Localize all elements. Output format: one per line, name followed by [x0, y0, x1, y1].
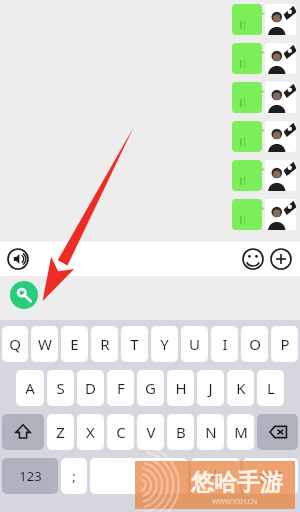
staticText: E — [70, 334, 79, 354]
staticText: M — [234, 422, 248, 442]
button[interactable]: Shift — [2, 414, 44, 450]
button[interactable]: Z — [47, 414, 74, 450]
button[interactable]: O — [241, 326, 268, 362]
button[interactable]: T — [121, 326, 148, 362]
staticText: G — [145, 378, 156, 398]
staticText: Z — [56, 422, 65, 442]
button[interactable]: 换行 — [243, 458, 298, 494]
staticText: J — [208, 378, 213, 398]
button[interactable]: Space — [90, 458, 188, 494]
staticText: 换行 — [259, 469, 283, 484]
staticText: U — [189, 334, 200, 354]
button[interactable]: F — [107, 370, 134, 406]
button[interactable]: Avatar — [265, 43, 296, 74]
staticText: Q — [9, 334, 21, 354]
staticText: A — [25, 378, 35, 398]
button[interactable]: P — [271, 326, 298, 362]
staticText: C — [116, 422, 126, 442]
staticText: Y — [160, 334, 169, 354]
button[interactable]: W — [31, 326, 58, 362]
staticText: 123 — [19, 467, 42, 485]
button[interactable] — [34, 246, 234, 272]
staticText: X — [86, 422, 95, 442]
staticText: V — [146, 422, 156, 442]
staticText: P — [280, 334, 290, 354]
button[interactable]: Avatar — [265, 160, 296, 191]
button[interactable]: Backspace — [257, 414, 298, 450]
staticText: D — [85, 378, 96, 398]
button[interactable]: K — [227, 370, 254, 406]
button[interactable]: M — [227, 414, 254, 450]
button[interactable]: A — [16, 370, 44, 406]
button[interactable] — [232, 199, 262, 230]
staticText: 悠哈手游 — [191, 468, 283, 497]
button[interactable]: R — [91, 326, 118, 362]
button[interactable]: Q — [2, 326, 28, 362]
staticText: T — [130, 334, 139, 354]
button[interactable]: Voice to text — [10, 281, 38, 309]
staticText: L — [267, 378, 275, 398]
button[interactable]: C — [107, 414, 134, 450]
button[interactable]: ; — [61, 458, 87, 494]
staticText: WWW.YXH.CN — [212, 497, 258, 507]
staticText: R — [100, 334, 110, 354]
button[interactable]: Avatar — [265, 199, 296, 230]
button[interactable]: X — [77, 414, 104, 450]
staticText: ; — [72, 467, 76, 485]
staticText: N — [205, 422, 217, 442]
button[interactable]: 123 — [2, 458, 58, 494]
staticText: B — [176, 422, 186, 442]
staticText: S — [56, 378, 65, 398]
button[interactable]: Voice input — [7, 248, 29, 270]
button[interactable]: G — [137, 370, 164, 406]
button[interactable]: Y — [151, 326, 178, 362]
staticText: 中 — [209, 468, 222, 484]
button[interactable]: I — [211, 326, 238, 362]
button[interactable]: 中 — [191, 458, 240, 494]
button[interactable] — [232, 160, 262, 191]
button[interactable]: E — [61, 326, 88, 362]
button[interactable] — [232, 121, 262, 152]
button[interactable] — [232, 82, 262, 113]
button[interactable]: S — [47, 370, 74, 406]
button[interactable]: D — [77, 370, 104, 406]
button[interactable]: H — [167, 370, 194, 406]
staticText: O — [249, 334, 261, 354]
button[interactable] — [232, 4, 262, 35]
button[interactable]: V — [137, 414, 164, 450]
staticText: W — [38, 334, 52, 354]
button[interactable]: Emoji — [242, 248, 264, 270]
button[interactable]: More — [270, 248, 292, 270]
staticText: K — [236, 378, 246, 398]
button[interactable]: U — [181, 326, 208, 362]
staticText: H — [175, 378, 187, 398]
button[interactable]: Avatar — [265, 4, 296, 35]
staticText: I — [222, 334, 228, 354]
button[interactable]: J — [197, 370, 224, 406]
button[interactable]: B — [167, 414, 194, 450]
button[interactable] — [232, 43, 262, 74]
button[interactable]: L — [257, 370, 284, 406]
button[interactable]: Avatar — [265, 121, 296, 152]
button[interactable]: Avatar — [265, 82, 296, 113]
staticText: F — [117, 378, 125, 398]
button[interactable]: N — [197, 414, 224, 450]
